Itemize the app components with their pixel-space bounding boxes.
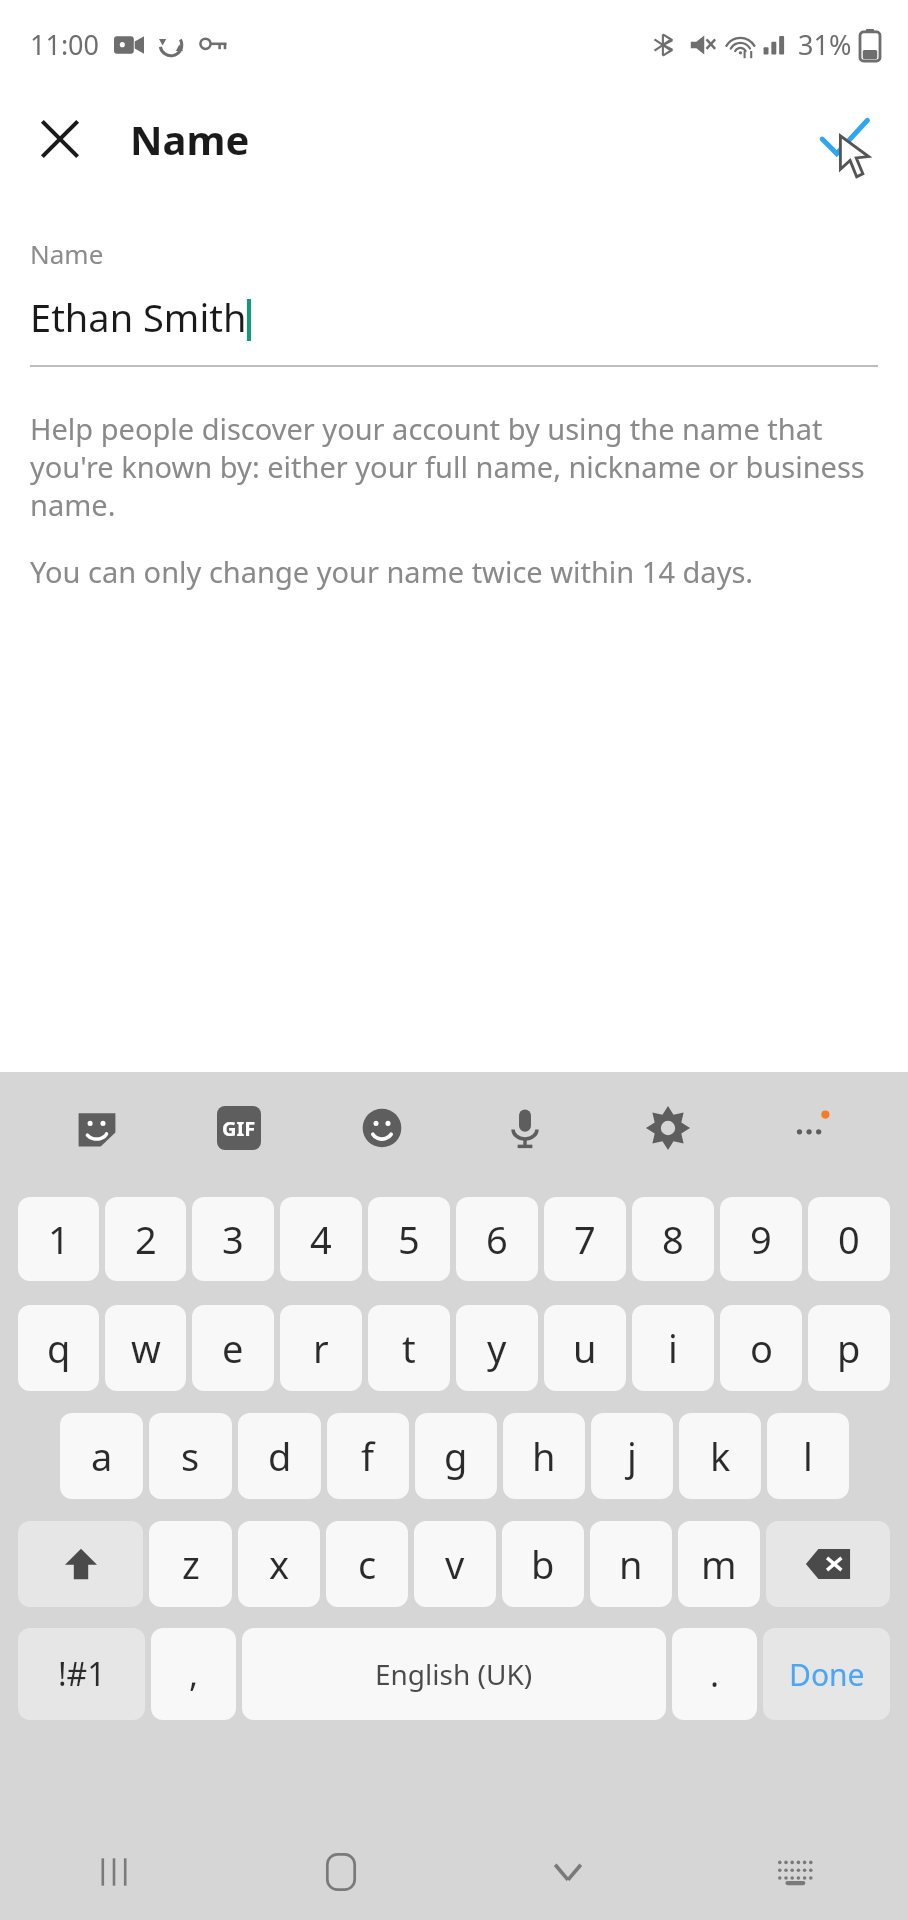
staticText: Name <box>30 236 104 271</box>
button[interactable]: q <box>18 1305 99 1391</box>
button[interactable]: x <box>238 1521 320 1607</box>
staticText: v <box>445 1538 465 1590</box>
button[interactable]: j <box>591 1413 673 1499</box>
staticText: y <box>487 1322 507 1374</box>
button[interactable]: h <box>503 1413 585 1499</box>
staticText: !#1 <box>58 1652 106 1696</box>
button[interactable]: o <box>720 1305 802 1391</box>
staticText: l <box>803 1430 813 1482</box>
button[interactable]: Shift <box>18 1521 143 1607</box>
staticText: 5 <box>398 1213 420 1265</box>
staticText: 31% <box>798 26 852 63</box>
staticText: c <box>358 1538 377 1590</box>
button[interactable]: !#1 <box>18 1628 145 1720</box>
staticText: k <box>710 1430 731 1482</box>
button[interactable]: . <box>672 1628 757 1720</box>
staticText: p <box>837 1322 861 1374</box>
button[interactable]: z <box>149 1521 232 1607</box>
button[interactable]: 5 <box>368 1197 450 1281</box>
button[interactable]: e <box>192 1305 274 1391</box>
button[interactable]: g <box>415 1413 497 1499</box>
button[interactable]: f <box>327 1413 409 1499</box>
staticText: e <box>222 1322 244 1374</box>
button[interactable]: Recents <box>0 1824 227 1920</box>
staticText: 1 <box>48 1213 70 1265</box>
button[interactable]: Home <box>227 1824 454 1920</box>
staticText: You can only change your name twice with… <box>30 552 754 591</box>
staticText: . <box>710 1651 720 1697</box>
button[interactable]: Voice input <box>453 1080 596 1176</box>
button[interactable]: l <box>767 1413 849 1499</box>
button[interactable]: a <box>60 1413 143 1499</box>
staticText: English (UK) <box>375 1655 533 1693</box>
button[interactable]: 1 <box>18 1197 99 1281</box>
button[interactable]: p <box>808 1305 890 1391</box>
staticText: Done <box>789 1654 865 1695</box>
button[interactable]: Close <box>22 101 98 177</box>
staticText: q <box>47 1322 71 1374</box>
button[interactable]: v <box>414 1521 496 1607</box>
button[interactable]: r <box>280 1305 362 1391</box>
staticText: s <box>181 1430 200 1482</box>
staticText: w <box>131 1322 161 1374</box>
button[interactable]: 4 <box>280 1197 362 1281</box>
button[interactable]: c <box>326 1521 408 1607</box>
button[interactable]: i <box>632 1305 714 1391</box>
button[interactable]: m <box>678 1521 760 1607</box>
button[interactable]: Ethan Smith <box>30 291 908 343</box>
button[interactable]: k <box>679 1413 761 1499</box>
button[interactable]: Done <box>763 1628 890 1720</box>
staticText: 8 <box>662 1213 684 1265</box>
staticText: t <box>402 1322 416 1374</box>
button[interactable]: More options <box>739 1080 882 1176</box>
button[interactable]: u <box>544 1305 626 1391</box>
button[interactable]: w <box>105 1305 186 1391</box>
staticText: 7 <box>574 1213 596 1265</box>
button[interactable]: Stickers <box>26 1080 168 1176</box>
button[interactable]: , <box>151 1628 236 1720</box>
staticText: Ethan Smith <box>30 291 247 343</box>
staticText: g <box>444 1430 468 1482</box>
staticText: u <box>573 1322 597 1374</box>
button[interactable]: Backspace <box>766 1521 890 1607</box>
staticText: 11:00 <box>30 26 100 63</box>
button[interactable]: 8 <box>632 1197 714 1281</box>
staticText: , <box>189 1651 199 1697</box>
staticText: n <box>619 1538 643 1590</box>
button[interactable]: y <box>456 1305 538 1391</box>
button[interactable]: Keyboard settings <box>596 1080 739 1176</box>
button[interactable]: b <box>502 1521 584 1607</box>
staticText: Help people discover your account by usi… <box>30 409 880 524</box>
button[interactable]: d <box>238 1413 321 1499</box>
staticText: 4 <box>310 1213 332 1265</box>
staticText: x <box>269 1538 290 1590</box>
staticText: 6 <box>486 1213 508 1265</box>
button[interactable]: Save <box>804 99 884 179</box>
staticText: 3 <box>222 1213 244 1265</box>
staticText: 0 <box>838 1213 860 1265</box>
button[interactable]: Switch keyboard <box>681 1824 908 1920</box>
button[interactable]: 6 <box>456 1197 538 1281</box>
staticText: b <box>531 1538 555 1590</box>
button[interactable]: t <box>368 1305 450 1391</box>
button[interactable]: 3 <box>192 1197 274 1281</box>
staticText: j <box>627 1430 637 1482</box>
button[interactable]: 9 <box>720 1197 802 1281</box>
staticText: d <box>268 1430 292 1482</box>
button[interactable]: n <box>590 1521 672 1607</box>
staticText: o <box>750 1322 773 1374</box>
staticText: GIF <box>222 1115 256 1142</box>
button[interactable]: 0 <box>808 1197 890 1281</box>
staticText: m <box>701 1538 737 1590</box>
button[interactable]: English (UK) <box>242 1628 666 1720</box>
button[interactable]: Emoji <box>310 1080 453 1176</box>
button[interactable]: GIF <box>168 1080 310 1176</box>
staticText: r <box>313 1322 329 1374</box>
button[interactable]: s <box>149 1413 232 1499</box>
button[interactable]: 7 <box>544 1197 626 1281</box>
staticText: f <box>361 1430 375 1482</box>
button[interactable]: Hide keyboard <box>454 1824 681 1920</box>
button[interactable]: 2 <box>105 1197 186 1281</box>
staticText: a <box>91 1430 113 1482</box>
staticText: i <box>668 1322 678 1374</box>
